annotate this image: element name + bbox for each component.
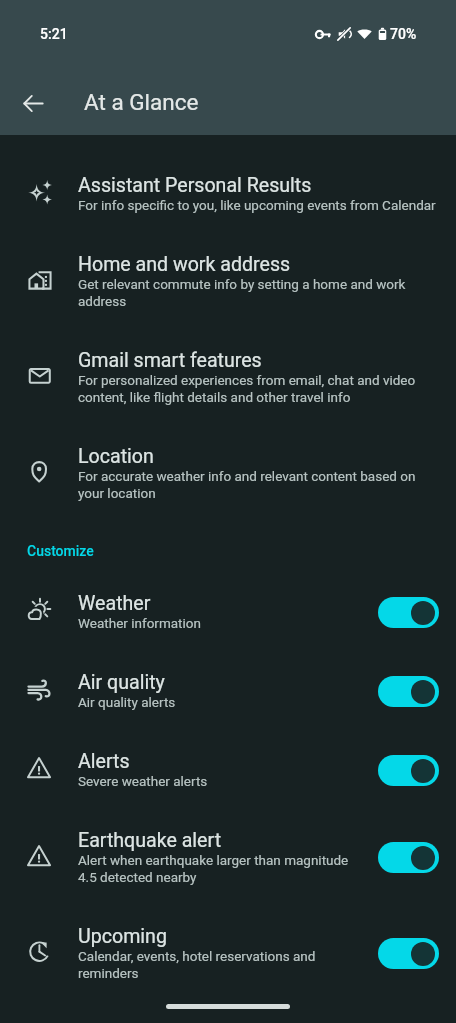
staticText: At a Glance bbox=[84, 89, 199, 115]
staticText: Weather information bbox=[78, 615, 201, 632]
staticText: 70% bbox=[390, 26, 417, 42]
button[interactable]: Toggle bbox=[378, 842, 439, 873]
button[interactable]: Weather bbox=[0, 571, 456, 650]
staticText: 5:21 bbox=[40, 26, 68, 42]
staticText: For personalized experiences from email,… bbox=[78, 372, 437, 406]
staticText: For info specific to you, like upcoming … bbox=[78, 197, 436, 214]
button[interactable]: Alerts bbox=[0, 729, 456, 808]
staticText: Calendar, events, hotel reservations and… bbox=[78, 948, 364, 982]
button[interactable]: Assistant Personal Results bbox=[0, 153, 456, 232]
staticText: Severe weather alerts bbox=[78, 773, 208, 790]
staticText: Alert when earthquake larger than magnit… bbox=[78, 852, 364, 886]
staticText: Home and work address bbox=[78, 250, 291, 276]
button[interactable]: Earthquake alert bbox=[0, 808, 456, 904]
button[interactable]: Toggle bbox=[378, 755, 439, 786]
staticText: For accurate weather info and relevant c… bbox=[78, 468, 437, 502]
staticText: Location bbox=[78, 442, 154, 468]
staticText: Earthquake alert bbox=[78, 826, 222, 852]
staticText: Customize bbox=[27, 543, 94, 559]
staticText: Air quality alerts bbox=[78, 694, 176, 711]
staticText: Gmail smart features bbox=[78, 346, 262, 372]
staticText: Get relevant commute info by setting a h… bbox=[78, 276, 437, 310]
staticText: Upcoming bbox=[78, 922, 167, 948]
button[interactable]: Air quality bbox=[0, 650, 456, 729]
button[interactable]: Home and work address bbox=[0, 232, 456, 328]
staticText: Air quality bbox=[78, 668, 165, 694]
staticText: Assistant Personal Results bbox=[78, 171, 312, 197]
button[interactable]: Upcoming bbox=[0, 904, 456, 1000]
button[interactable]: Gmail smart features bbox=[0, 328, 456, 424]
button[interactable]: Location bbox=[0, 424, 456, 520]
button[interactable]: Toggle bbox=[378, 938, 439, 969]
staticText: Alerts bbox=[78, 747, 130, 773]
button[interactable]: Toggle bbox=[378, 676, 439, 707]
button[interactable]: Back bbox=[10, 80, 56, 126]
button[interactable]: Toggle bbox=[378, 597, 439, 628]
staticText: Weather bbox=[78, 589, 151, 615]
